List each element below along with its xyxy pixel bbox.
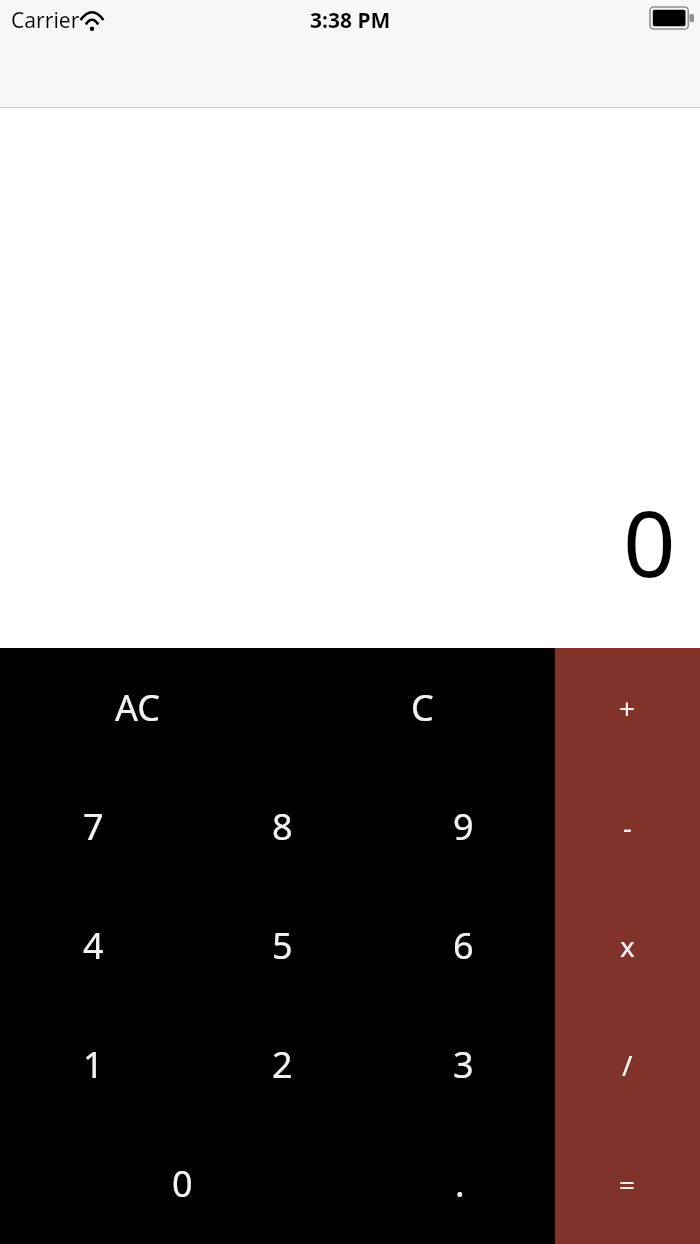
staticText: / xyxy=(622,1046,633,1084)
button[interactable]: C xyxy=(364,648,480,767)
staticText: AC xyxy=(115,683,161,732)
staticText: C xyxy=(411,683,434,732)
staticText: 1 xyxy=(83,1040,104,1089)
staticText: Carrier xyxy=(11,6,80,35)
staticText: 3 xyxy=(453,1040,474,1089)
staticText: 5 xyxy=(272,921,293,970)
staticText: + xyxy=(619,689,636,727)
staticText: . xyxy=(455,1159,465,1208)
staticText: 3:38 PM xyxy=(310,6,391,35)
button[interactable]: 2 xyxy=(224,1005,340,1124)
button[interactable]: 4 xyxy=(35,886,151,1005)
staticText: 9 xyxy=(453,802,474,851)
button[interactable]: 5 xyxy=(224,886,340,1005)
staticText: 4 xyxy=(83,921,104,970)
button[interactable]: AC xyxy=(80,648,196,767)
button[interactable]: 7 xyxy=(35,767,151,886)
button[interactable]: Multiply xyxy=(555,886,700,1005)
button[interactable]: 9 xyxy=(405,767,521,886)
button[interactable]: 3 xyxy=(405,1005,521,1124)
button[interactable]: 0 xyxy=(124,1124,240,1243)
button[interactable]: Equals xyxy=(555,1124,700,1243)
button[interactable]: Subtract xyxy=(555,767,700,886)
staticText: - xyxy=(623,808,633,846)
button[interactable]: 1 xyxy=(35,1005,151,1124)
staticText: 8 xyxy=(272,802,293,851)
button[interactable]: 8 xyxy=(224,767,340,886)
staticText: x xyxy=(620,927,635,965)
button[interactable]: Add xyxy=(555,648,700,767)
staticText: 6 xyxy=(453,921,474,970)
staticText: = xyxy=(619,1165,636,1203)
staticText: 7 xyxy=(83,802,104,851)
button[interactable]: Divide xyxy=(555,1005,700,1124)
staticText: 2 xyxy=(272,1040,293,1089)
button[interactable]: 6 xyxy=(405,886,521,1005)
staticText: 0 xyxy=(172,1159,193,1208)
button[interactable]: . xyxy=(402,1124,518,1243)
staticText: 0 xyxy=(623,479,676,604)
